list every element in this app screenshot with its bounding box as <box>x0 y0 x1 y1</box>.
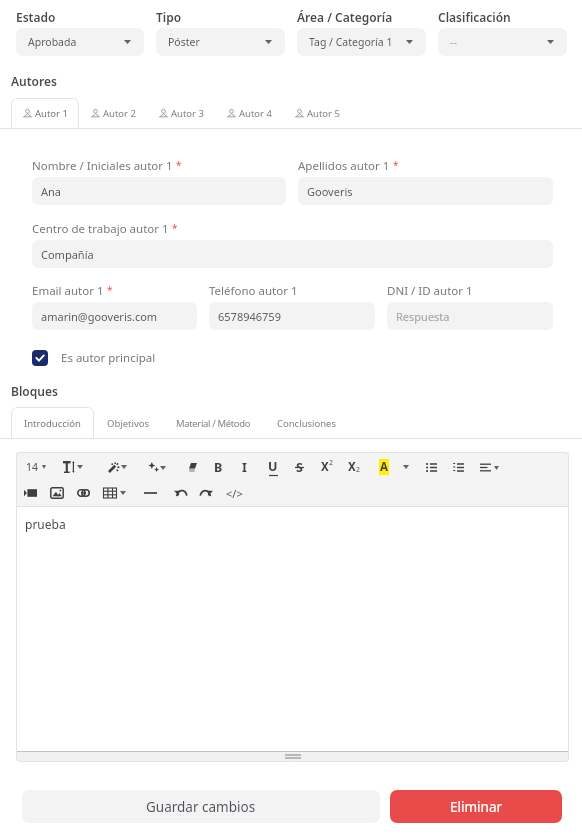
staticText: Tipo <box>156 9 182 25</box>
button[interactable]: Material / Método <box>163 407 264 439</box>
staticText: 2 <box>356 465 361 475</box>
staticText: Gooveris <box>307 184 353 199</box>
button[interactable]: Video <box>24 484 37 502</box>
staticText: amarin@gooveris.com <box>41 309 158 324</box>
staticText: 6578946759 <box>218 309 281 324</box>
button[interactable]: Ana <box>32 177 286 205</box>
staticText: Eliminar <box>450 798 503 816</box>
button[interactable]: Undo <box>174 484 186 502</box>
button[interactable]: Horizontal rule <box>144 484 157 502</box>
staticText: 14 <box>26 460 39 474</box>
button[interactable]: Effects <box>148 458 168 476</box>
button[interactable]: Redo <box>201 484 213 502</box>
staticText: A <box>380 459 388 475</box>
staticText: Material / Método <box>176 417 251 430</box>
staticText: Autor 4 <box>239 107 272 120</box>
button[interactable]: Gooveris <box>298 177 553 205</box>
staticText: Centro de trabajo autor 1 <box>32 221 169 237</box>
button[interactable]: Font size <box>26 458 46 476</box>
button[interactable]: Compañía <box>32 240 553 268</box>
staticText: Compañía <box>41 247 94 262</box>
button[interactable]: Respuesta <box>387 302 553 330</box>
button[interactable]: Póster <box>156 28 285 56</box>
staticText: prueba <box>25 516 66 532</box>
button[interactable]: Eliminar <box>390 790 562 823</box>
button[interactable]: Autor 5 <box>283 98 351 129</box>
button[interactable]: amarin@gooveris.com <box>32 302 197 330</box>
button[interactable]: Autor 4 <box>215 98 283 129</box>
button[interactable]: Autor 3 <box>147 98 215 129</box>
button[interactable]: Link <box>77 484 90 502</box>
staticText: Autor 5 <box>307 107 340 120</box>
staticText: * <box>176 158 182 172</box>
staticText: * <box>393 158 399 172</box>
button[interactable]: Objetivos <box>94 407 163 439</box>
button[interactable]: Text colour <box>379 458 391 476</box>
button[interactable]: Introducción <box>11 407 94 439</box>
button[interactable]: -- <box>438 28 567 56</box>
staticText: Guardar cambios <box>146 798 256 816</box>
button[interactable]: Bulleted list <box>426 458 437 476</box>
staticText: Póster <box>168 35 200 49</box>
button[interactable]: Image <box>50 484 64 502</box>
staticText: Autor 3 <box>171 107 204 120</box>
button[interactable]: Text style <box>63 458 85 476</box>
staticText: Email autor 1 <box>32 283 104 299</box>
staticText: Autor 2 <box>103 107 136 120</box>
staticText: Autores <box>11 73 57 89</box>
staticText: Aprobada <box>28 35 77 49</box>
button[interactable]: Italic <box>242 458 249 476</box>
button[interactable]: Strikethrough <box>295 458 304 476</box>
staticText: Bloques <box>11 383 58 399</box>
button[interactable]: Conclusiones <box>264 407 350 439</box>
button[interactable]: Guardar cambios <box>22 790 380 823</box>
button[interactable]: Autor 2 <box>79 98 147 129</box>
button[interactable]: Subscript <box>348 458 363 476</box>
staticText: DNI / ID autor 1 <box>387 283 473 299</box>
staticText: Conclusiones <box>277 417 337 430</box>
button[interactable]: Autor 1 <box>11 98 79 129</box>
button[interactable]: Align <box>480 458 499 476</box>
staticText: Área / Categoría <box>297 9 393 25</box>
staticText: * <box>172 221 178 235</box>
staticText: Apellidos autor 1 <box>298 158 390 174</box>
staticText: Objetivos <box>107 417 150 430</box>
button[interactable]: Underline <box>268 458 279 476</box>
staticText: X <box>348 459 356 475</box>
staticText: Tag / Categoría 1 <box>309 35 393 49</box>
button[interactable]: Superscript <box>321 458 336 476</box>
button[interactable]: Tag / Categoría 1 <box>297 28 426 56</box>
button[interactable]: Paste <box>189 458 198 476</box>
staticText: -- <box>450 35 457 49</box>
staticText: Nombre / Iniciales autor 1 <box>32 158 173 174</box>
button[interactable]: 6578946759 <box>209 302 375 330</box>
button[interactable]: Source code <box>226 484 244 502</box>
staticText: Es autor principal <box>61 350 156 366</box>
staticText: Respuesta <box>396 309 450 324</box>
staticText: X <box>321 459 329 475</box>
staticText: Introducción <box>24 417 81 430</box>
staticText: 2 <box>329 458 334 468</box>
button[interactable]: Aprobada <box>16 28 144 56</box>
staticText: * <box>107 283 113 297</box>
staticText: Autor 1 <box>35 107 68 120</box>
button[interactable]: Clear formatting <box>108 458 128 476</box>
staticText: </> <box>226 486 243 501</box>
button[interactable]: Es autor principal <box>32 350 156 366</box>
staticText: U <box>268 458 278 475</box>
button[interactable]: Table <box>103 484 127 502</box>
button[interactable]: Numbered list <box>453 458 464 476</box>
staticText: S <box>296 459 303 476</box>
staticText: I <box>242 459 247 476</box>
staticText: Clasificación <box>438 9 511 25</box>
staticText: Estado <box>16 9 56 25</box>
staticText: Teléfono autor 1 <box>209 283 298 299</box>
staticText: B <box>214 459 223 476</box>
button[interactable]: Bold <box>214 458 223 476</box>
staticText: Ana <box>41 184 61 199</box>
button[interactable]: Text colour options <box>403 458 409 476</box>
